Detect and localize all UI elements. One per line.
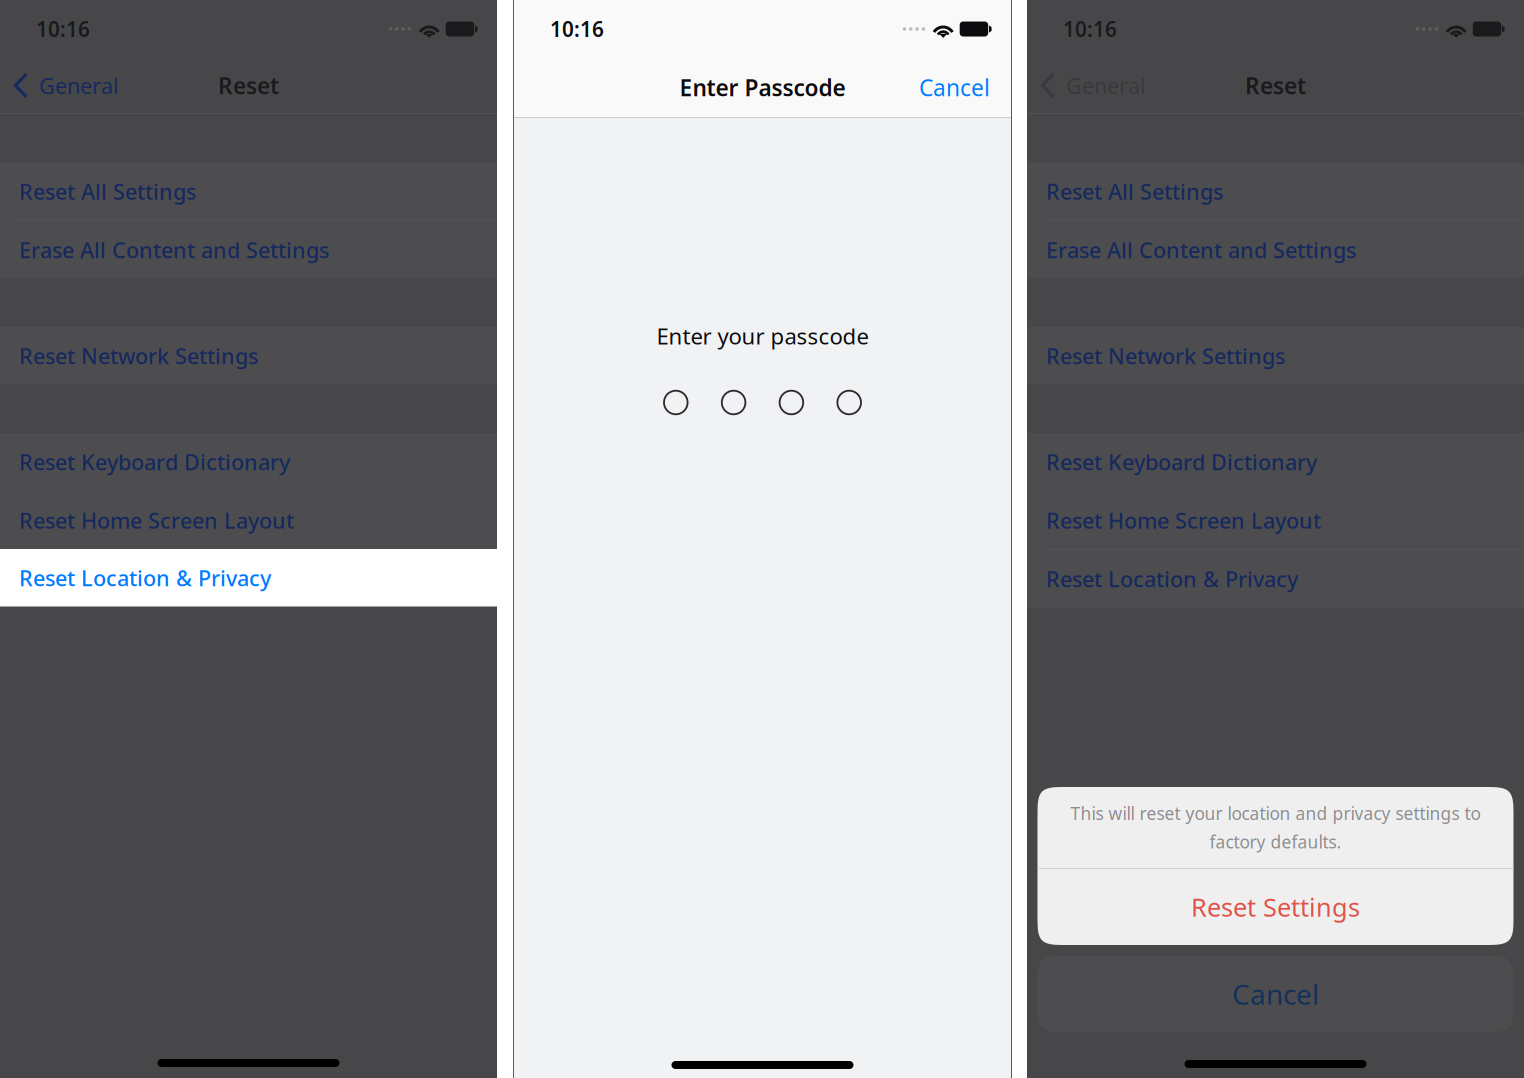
staticText: factory defaults. <box>1209 830 1341 854</box>
staticText: Reset Home Screen Layout <box>19 505 294 535</box>
staticText: Reset <box>218 70 279 101</box>
staticText: This will reset your location and privac… <box>1070 801 1480 825</box>
button[interactable]: Reset Location & Privacy <box>0 549 497 606</box>
button[interactable]: Reset Keyboard Dictionary <box>0 433 497 490</box>
button[interactable]: Reset Network Settings <box>0 327 497 384</box>
staticText: Reset Home Screen Layout <box>1046 505 1321 535</box>
staticText: Erase All Content and Settings <box>1046 235 1356 264</box>
staticText: Enter your passcode <box>656 321 868 351</box>
staticText: Reset Settings <box>1191 890 1360 924</box>
button[interactable]: Erase All Content and Settings <box>0 221 497 278</box>
button[interactable]: Reset Home Screen Layout <box>1027 491 1524 549</box>
button[interactable]: Reset Keyboard Dictionary <box>1027 433 1524 490</box>
button[interactable]: Reset Location & Privacy <box>1027 550 1524 607</box>
staticText: Reset Keyboard Dictionary <box>1046 447 1317 476</box>
staticText: Reset Network Settings <box>19 341 258 370</box>
staticText: General <box>1066 71 1146 100</box>
staticText: Erase All Content and Settings <box>19 235 329 264</box>
staticText: Reset All Settings <box>1046 176 1223 206</box>
button[interactable]: General <box>1027 58 1146 113</box>
button[interactable]: Reset Network Settings <box>1027 327 1524 384</box>
staticText: General <box>39 71 119 100</box>
button[interactable]: Erase All Content and Settings <box>1027 221 1524 278</box>
staticText: 10:16 <box>36 15 90 43</box>
button[interactable]: Reset Settings <box>1037 869 1513 945</box>
staticText: Reset <box>1245 70 1306 101</box>
button[interactable]: General <box>0 58 119 113</box>
staticText: Cancel <box>1232 975 1319 1013</box>
staticText: Reset Location & Privacy <box>1046 564 1298 593</box>
staticText: Reset Location & Privacy <box>19 563 271 592</box>
button[interactable]: Cancel <box>919 58 1011 117</box>
staticText: Reset Network Settings <box>1046 341 1285 370</box>
button[interactable]: Reset Home Screen Layout <box>0 491 497 549</box>
staticText: Reset All Settings <box>19 176 196 206</box>
staticText: Cancel <box>919 72 990 103</box>
button[interactable]: Cancel <box>1037 956 1513 1032</box>
button[interactable]: Reset All Settings <box>0 162 497 220</box>
staticText: 10:16 <box>550 15 604 43</box>
staticText: Enter Passcode <box>679 72 845 103</box>
button[interactable]: Reset All Settings <box>1027 162 1524 220</box>
staticText: Reset Keyboard Dictionary <box>19 447 290 476</box>
staticText: 10:16 <box>1063 15 1117 43</box>
